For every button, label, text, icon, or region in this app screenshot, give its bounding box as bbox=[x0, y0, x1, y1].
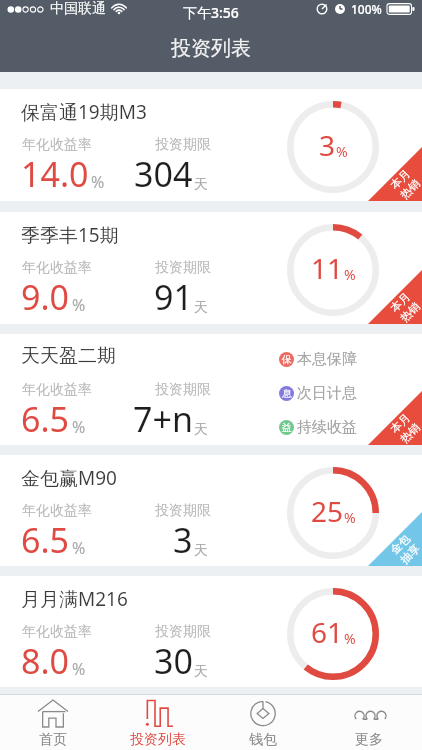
staticText: 本月 bbox=[387, 289, 413, 315]
staticText: 3 bbox=[173, 517, 193, 563]
staticText: 6.5 bbox=[21, 517, 70, 563]
button[interactable]: 钱包 bbox=[210, 695, 316, 750]
staticText: 月月满M216 bbox=[21, 586, 128, 612]
staticText: % bbox=[344, 265, 356, 284]
button[interactable]: 金包赢M90 bbox=[0, 455, 422, 566]
staticText: 9.0 bbox=[21, 274, 70, 320]
staticText: 6.5 bbox=[21, 396, 70, 442]
staticText: 本息保障 bbox=[297, 350, 357, 369]
staticText: 11 bbox=[311, 249, 344, 287]
staticText: 投资列表 bbox=[171, 36, 251, 61]
staticText: 年化收益率 bbox=[22, 259, 92, 277]
staticText: % bbox=[336, 142, 348, 161]
staticText: 年化收益率 bbox=[22, 623, 92, 641]
staticText: 91 bbox=[154, 274, 193, 320]
button[interactable]: 季季丰15期 bbox=[0, 212, 422, 324]
staticText: % bbox=[344, 508, 356, 527]
button[interactable]: 月月满M216 bbox=[0, 576, 422, 687]
other: Alarm bbox=[334, 3, 346, 15]
staticText: % bbox=[72, 416, 86, 438]
staticText: 25 bbox=[311, 492, 344, 530]
staticText: 本月 bbox=[387, 166, 413, 192]
staticText: 更多 bbox=[355, 731, 383, 749]
staticText: 金包赢M90 bbox=[21, 465, 117, 491]
staticText: 61 bbox=[311, 613, 344, 651]
staticText: 投资期限 bbox=[155, 502, 211, 520]
staticText: 热销 bbox=[397, 420, 422, 446]
staticText: % bbox=[72, 658, 86, 680]
staticText: 季季丰15期 bbox=[21, 222, 119, 248]
staticText: 天 bbox=[194, 299, 208, 317]
staticText: 持续收益 bbox=[297, 418, 357, 437]
staticText: 100% bbox=[351, 1, 382, 17]
button[interactable]: 首页 bbox=[0, 695, 105, 750]
staticText: % bbox=[91, 171, 105, 193]
staticText: 投资期限 bbox=[155, 623, 211, 641]
staticText: 保富通19期M3 bbox=[21, 99, 147, 125]
staticText: 中国联通 bbox=[50, 0, 106, 18]
staticText: 抽享 bbox=[397, 541, 422, 567]
staticText: 次日计息 bbox=[297, 384, 357, 403]
staticText: 下午3:56 bbox=[183, 3, 239, 22]
staticText: 本月 bbox=[387, 410, 413, 436]
staticText: 息 bbox=[282, 387, 292, 400]
staticText: 7+n bbox=[133, 396, 193, 442]
staticText: % bbox=[72, 294, 86, 316]
staticText: 304 bbox=[134, 151, 193, 197]
staticText: 金包 bbox=[387, 531, 413, 557]
staticText: 投资期限 bbox=[155, 259, 211, 277]
other: Rotation lock bbox=[316, 3, 328, 15]
staticText: 天 bbox=[194, 542, 208, 560]
staticText: 8.0 bbox=[21, 638, 70, 684]
staticText: 天天盈二期 bbox=[21, 344, 116, 368]
staticText: 天 bbox=[194, 663, 208, 681]
staticText: 14.0 bbox=[21, 151, 89, 197]
button[interactable]: 投资列表 bbox=[105, 695, 210, 750]
staticText: 天 bbox=[194, 176, 208, 194]
staticText: 热销 bbox=[397, 299, 422, 325]
staticText: 30 bbox=[154, 638, 193, 684]
staticText: 年化收益率 bbox=[22, 136, 92, 154]
staticText: 热销 bbox=[397, 176, 422, 202]
staticText: 年化收益率 bbox=[22, 381, 92, 399]
button[interactable]: 保富通19期M3 bbox=[0, 89, 422, 201]
button[interactable]: 更多 bbox=[316, 695, 422, 750]
staticText: 益 bbox=[282, 421, 292, 434]
staticText: 首页 bbox=[39, 731, 67, 749]
staticText: 钱包 bbox=[249, 731, 277, 749]
staticText: 投资期限 bbox=[155, 381, 211, 399]
button[interactable]: 天天盈二期 bbox=[0, 334, 422, 445]
staticText: % bbox=[344, 629, 356, 648]
staticText: 保 bbox=[282, 353, 292, 366]
staticText: 年化收益率 bbox=[22, 502, 92, 520]
staticText: 投资期限 bbox=[155, 136, 211, 154]
staticText: % bbox=[72, 537, 86, 559]
staticText: 天 bbox=[194, 421, 208, 439]
staticText: 3 bbox=[319, 126, 336, 164]
staticText: 投资列表 bbox=[130, 731, 186, 749]
